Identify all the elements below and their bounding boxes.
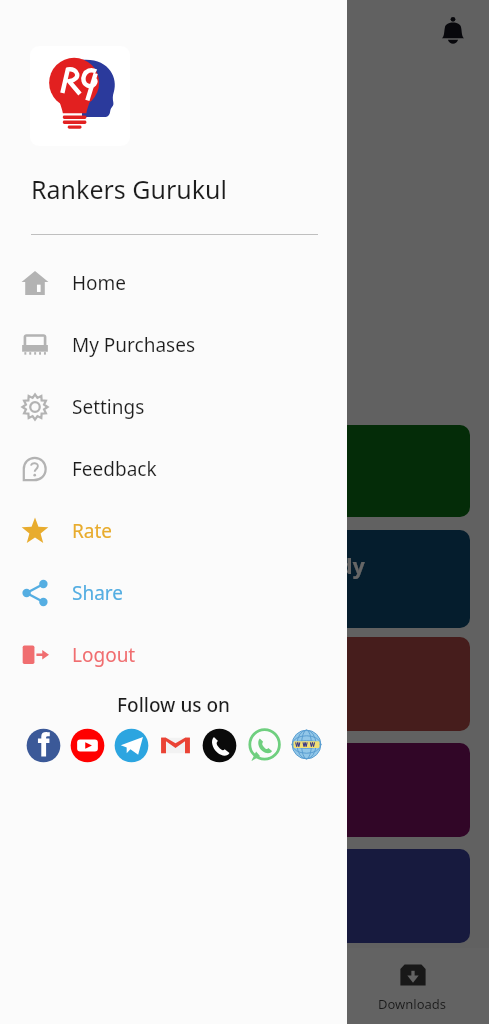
button[interactable]: Demo Videos xyxy=(232,425,470,517)
button[interactable]: Share xyxy=(0,562,347,624)
button[interactable]: My Purchases xyxy=(0,314,347,376)
button[interactable]: YouTube xyxy=(69,727,106,764)
button[interactable]: Call us xyxy=(201,727,238,764)
staticText: Share xyxy=(72,580,124,606)
button[interactable]: Store xyxy=(232,637,470,731)
button[interactable]: Post xyxy=(232,849,470,943)
button[interactable]: Settings xyxy=(0,376,347,438)
button[interactable]: Quiz xyxy=(232,743,470,837)
staticText: Rate xyxy=(72,518,113,544)
button[interactable]: Home xyxy=(0,252,347,314)
button[interactable] xyxy=(0,0,489,1024)
staticText: Feedback xyxy=(72,456,157,482)
button[interactable]: Telegram xyxy=(113,727,150,764)
staticText: Follow us on xyxy=(0,692,347,718)
staticText: Logout xyxy=(72,642,136,668)
button[interactable]: Website xyxy=(289,727,324,764)
staticText: Free Study Material xyxy=(254,552,365,607)
button[interactable]: Notifications xyxy=(428,6,478,56)
button[interactable]: Gmail xyxy=(157,727,194,764)
button[interactable]: Rate xyxy=(0,500,347,562)
button[interactable]: Facebook xyxy=(25,727,62,764)
button[interactable]: Downloads xyxy=(378,960,447,1013)
button[interactable]: Logout xyxy=(0,624,347,686)
staticText: Settings xyxy=(72,394,145,420)
button[interactable]: App logo xyxy=(30,46,130,146)
button[interactable]: WhatsApp xyxy=(245,727,282,764)
staticText: My Purchases xyxy=(72,332,196,358)
staticText: Rankers Gurukul xyxy=(31,172,227,206)
staticText: Downloads xyxy=(378,995,447,1013)
button[interactable]: Feedback xyxy=(0,438,347,500)
staticText: Home xyxy=(72,270,127,296)
button[interactable]: Free Study Material xyxy=(232,530,470,628)
